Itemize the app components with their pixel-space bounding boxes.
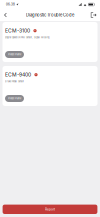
- staticText: Engine Speed (RPM) Sensor, Signal Missin…: [5, 36, 49, 39]
- button[interactable]: Export: [89, 10, 98, 19]
- button[interactable]: Report: [3, 205, 97, 214]
- staticText: ECM-3100: [5, 28, 30, 34]
- staticText: Brake Pedal Sensor: [5, 80, 24, 83]
- button[interactable]: Freeze Frame: [5, 95, 24, 102]
- staticText: 06:38: [6, 3, 15, 6]
- staticText: Freeze Frame: [8, 53, 21, 56]
- button[interactable]: Freeze Frame: [5, 51, 24, 58]
- staticText: Freeze Frame: [8, 97, 21, 100]
- staticText: ECM-9400: [5, 72, 31, 78]
- staticText: Diagnostic Trouble Code: [26, 12, 74, 17]
- staticText: Report: [45, 207, 55, 211]
- button[interactable]: Back: [1, 10, 10, 19]
